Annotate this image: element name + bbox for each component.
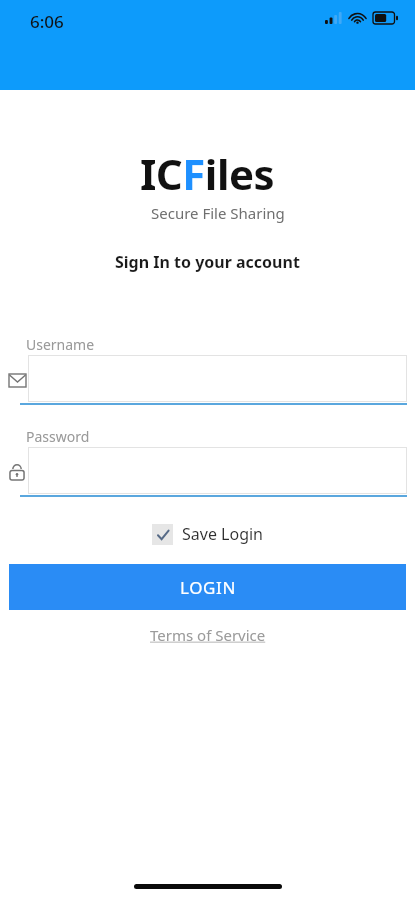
other: Username	[8, 371, 26, 389]
staticText: 6:06	[30, 10, 64, 33]
staticText: Save Login	[182, 523, 263, 545]
button[interactable]: Save Login	[148, 521, 267, 547]
staticText: Sign In to your account	[115, 251, 300, 273]
button[interactable]: LOGIN	[9, 564, 406, 610]
button[interactable]	[28, 355, 407, 402]
staticText: Secure File Sharing	[151, 203, 285, 223]
staticText: Password	[26, 427, 90, 446]
staticText: ICFiles	[140, 145, 275, 202]
staticText: Username	[26, 335, 95, 354]
staticText: Terms of Service	[150, 625, 266, 645]
staticText: LOGIN	[180, 576, 236, 599]
other: Password	[8, 463, 26, 481]
button[interactable]	[28, 447, 407, 494]
button[interactable]: Terms of Service	[146, 621, 270, 649]
